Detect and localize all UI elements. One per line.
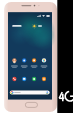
button[interactable]: Google search — [10, 90, 50, 95]
button[interactable]: Dock shortcut — [11, 75, 17, 81]
button[interactable]: Dock shortcut — [41, 75, 47, 81]
button[interactable]: Dock shortcut — [21, 75, 27, 81]
button[interactable]: Dock shortcut — [31, 75, 37, 81]
button[interactable]: Open app — [30, 58, 38, 69]
button[interactable]: Open app — [40, 58, 48, 69]
button[interactable]: Open app — [10, 58, 18, 69]
button[interactable]: Open app — [20, 58, 28, 69]
